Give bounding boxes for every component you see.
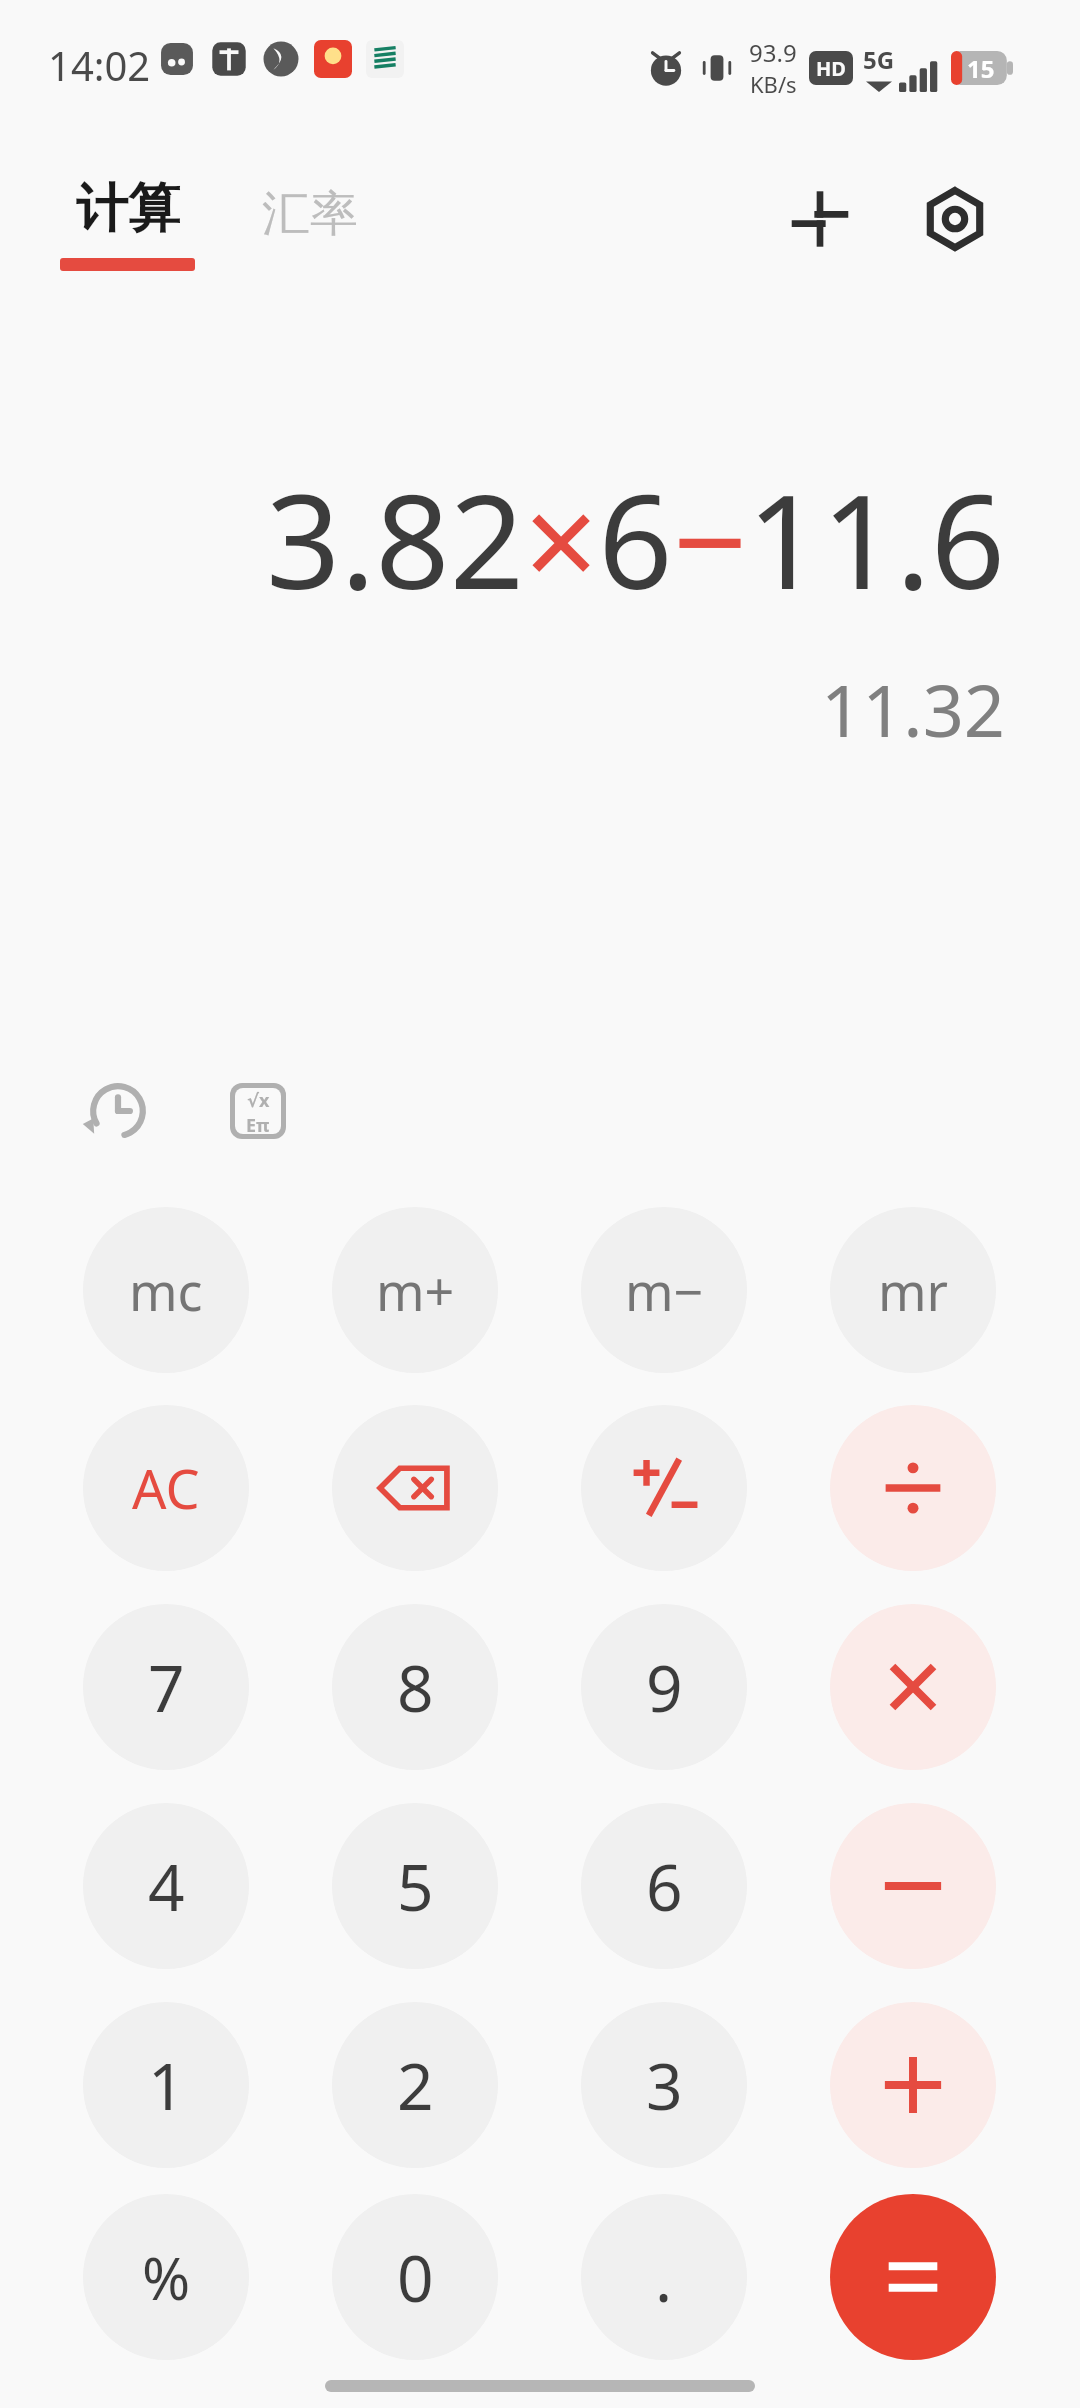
staticText: AC: [132, 1451, 200, 1525]
button[interactable]: 8: [332, 1604, 498, 1770]
button[interactable]: 5: [332, 1803, 498, 1969]
staticText: KB/s: [750, 69, 797, 99]
button[interactable]: Minus: [830, 1803, 996, 1969]
button[interactable]: 汇率: [250, 176, 370, 252]
button[interactable]: Settings: [910, 174, 1000, 264]
staticText: 6: [646, 1843, 683, 1930]
button[interactable]: 0: [332, 2194, 498, 2360]
staticText: 5G: [863, 43, 895, 76]
button[interactable]: Backspace: [332, 1405, 498, 1571]
staticText: 15: [967, 52, 995, 85]
staticText: 3.82×6−11.6: [0, 450, 1005, 627]
button[interactable]: AC: [83, 1405, 249, 1571]
staticText: m−: [625, 1255, 704, 1326]
button[interactable]: Toggle sign: [581, 1405, 747, 1571]
staticText: m+: [376, 1255, 455, 1326]
button[interactable]: Divide: [830, 1405, 996, 1571]
staticText: 14:02: [48, 38, 151, 92]
button[interactable]: Equals: [830, 2194, 996, 2360]
staticText: 汇率: [262, 184, 358, 244]
button[interactable]: .: [581, 2194, 747, 2360]
staticText: mc: [129, 1255, 203, 1326]
staticText: 7: [148, 1644, 185, 1731]
staticText: 计算: [76, 176, 180, 242]
button[interactable]: m−: [581, 1207, 747, 1373]
button[interactable]: 1: [83, 2002, 249, 2168]
button[interactable]: %: [83, 2194, 249, 2360]
button[interactable]: mr: [830, 1207, 996, 1373]
staticText: √x: [247, 1088, 270, 1113]
staticText: %: [142, 2238, 191, 2317]
staticText: 1: [148, 2042, 185, 2129]
button[interactable]: 2: [332, 2002, 498, 2168]
button[interactable]: History: [75, 1068, 161, 1154]
button[interactable]: 7: [83, 1604, 249, 1770]
staticText: 4: [148, 1843, 185, 1930]
staticText: 93.9: [749, 36, 797, 69]
staticText: mr: [878, 1255, 949, 1326]
staticText: 3: [646, 2042, 683, 2129]
button[interactable]: 3: [581, 2002, 747, 2168]
staticText: 9: [646, 1644, 683, 1731]
button[interactable]: Multiply: [830, 1604, 996, 1770]
staticText: 2: [397, 2042, 434, 2129]
button[interactable]: 9: [581, 1604, 747, 1770]
button[interactable]: Scientific mode: [215, 1068, 301, 1154]
staticText: HD: [816, 55, 846, 82]
button[interactable]: mc: [83, 1207, 249, 1373]
button[interactable]: 4: [83, 1803, 249, 1969]
staticText: 11.32: [0, 660, 1005, 758]
staticText: 8: [397, 1644, 434, 1731]
button[interactable]: Plus: [830, 2002, 996, 2168]
button[interactable]: 计算: [50, 170, 205, 277]
button[interactable]: m+: [332, 1207, 498, 1373]
staticText: 5: [397, 1843, 434, 1930]
staticText: .: [655, 2234, 673, 2321]
staticText: Eπ: [246, 1113, 270, 1134]
staticText: 0: [397, 2234, 434, 2321]
button[interactable]: Collapse keypad: [775, 174, 865, 264]
button[interactable]: 6: [581, 1803, 747, 1969]
